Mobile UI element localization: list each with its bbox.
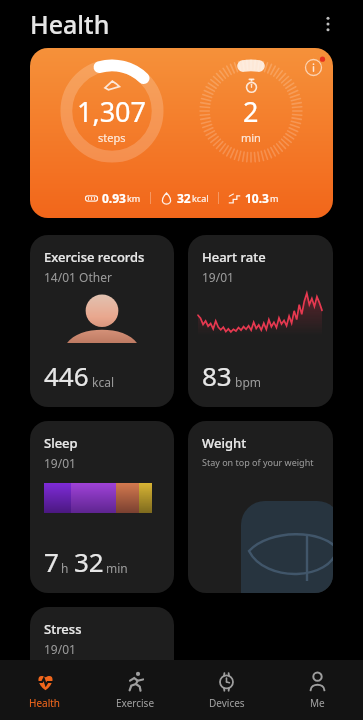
staticText: km bbox=[127, 192, 141, 204]
button[interactable]: Health bbox=[0, 660, 90, 720]
staticText: 7 bbox=[44, 544, 59, 579]
staticText: 19/01 bbox=[44, 455, 76, 471]
button[interactable]: Stress bbox=[30, 607, 174, 697]
staticText: 0.93 bbox=[102, 190, 126, 206]
button[interactable]: Heart rate bbox=[188, 235, 333, 407]
staticText: 446 bbox=[44, 358, 89, 393]
staticText: h bbox=[61, 560, 69, 576]
button[interactable]: Me bbox=[272, 660, 363, 720]
staticText: Health bbox=[30, 7, 110, 41]
button[interactable]: Information bbox=[30, 48, 333, 218]
button[interactable]: Information bbox=[300, 54, 326, 80]
staticText: 14/01 Other bbox=[44, 269, 112, 285]
staticText: Stay on top of your weight bbox=[202, 456, 314, 468]
button[interactable]: Exercise bbox=[90, 660, 181, 720]
button[interactable]: Weight bbox=[188, 421, 333, 593]
staticText: Sleep bbox=[44, 434, 78, 452]
staticText: min bbox=[241, 130, 261, 145]
staticText: Stress bbox=[44, 620, 82, 638]
staticText: Me bbox=[310, 696, 325, 710]
staticText: Weight bbox=[202, 434, 247, 452]
staticText: kcal bbox=[92, 374, 114, 390]
button[interactable]: Exercise records bbox=[30, 235, 174, 407]
staticText: 19/01 bbox=[44, 641, 76, 657]
button[interactable]: More options bbox=[311, 7, 345, 41]
button[interactable]: Sleep bbox=[30, 421, 174, 593]
staticText: kcal bbox=[192, 192, 209, 204]
staticText: 32 bbox=[74, 544, 104, 579]
staticText: m bbox=[270, 192, 279, 204]
staticText: Exercise bbox=[116, 696, 155, 710]
staticText: 19/01 bbox=[202, 269, 234, 285]
staticText: steps bbox=[98, 130, 126, 145]
staticText: 2 bbox=[243, 93, 259, 130]
staticText: Health bbox=[29, 696, 61, 710]
staticText: Heart rate bbox=[202, 248, 266, 266]
staticText: 10.3 bbox=[245, 190, 269, 206]
staticText: Exercise records bbox=[44, 248, 145, 266]
staticText: min bbox=[106, 560, 128, 576]
staticText: bpm bbox=[235, 374, 261, 390]
staticText: 1,307 bbox=[77, 93, 147, 130]
staticText: Devices bbox=[209, 696, 245, 710]
button[interactable]: Devices bbox=[181, 660, 272, 720]
staticText: 83 bbox=[202, 358, 232, 393]
staticText: 32 bbox=[177, 190, 191, 206]
